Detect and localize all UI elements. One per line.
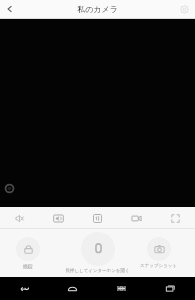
staticText: 長押ししてインターホンを開く [65,268,130,274]
button[interactable]: Back [0,277,48,300]
button[interactable]: スナップショット [140,237,177,269]
button[interactable]: Speaker [39,207,78,229]
staticText: 施錠 [23,263,33,269]
button[interactable]: 長押ししてインターホンを開く [65,232,130,274]
button[interactable]: Recents [146,277,195,300]
button[interactable]: Settings [173,0,195,18]
button[interactable]: SD card [78,207,117,229]
button[interactable]: Home [48,277,97,300]
button[interactable]: Record video [117,207,156,229]
button[interactable]: 施錠 [16,237,40,269]
button[interactable]: Fullscreen [156,207,195,229]
staticText: 私のカメラ [77,4,118,14]
button[interactable]: Back [0,0,20,18]
button[interactable]: Mute microphone [0,207,39,229]
button[interactable]: Recording indicator [5,184,14,193]
staticText: スナップショット [140,263,177,269]
button[interactable]: Menu [97,277,146,300]
